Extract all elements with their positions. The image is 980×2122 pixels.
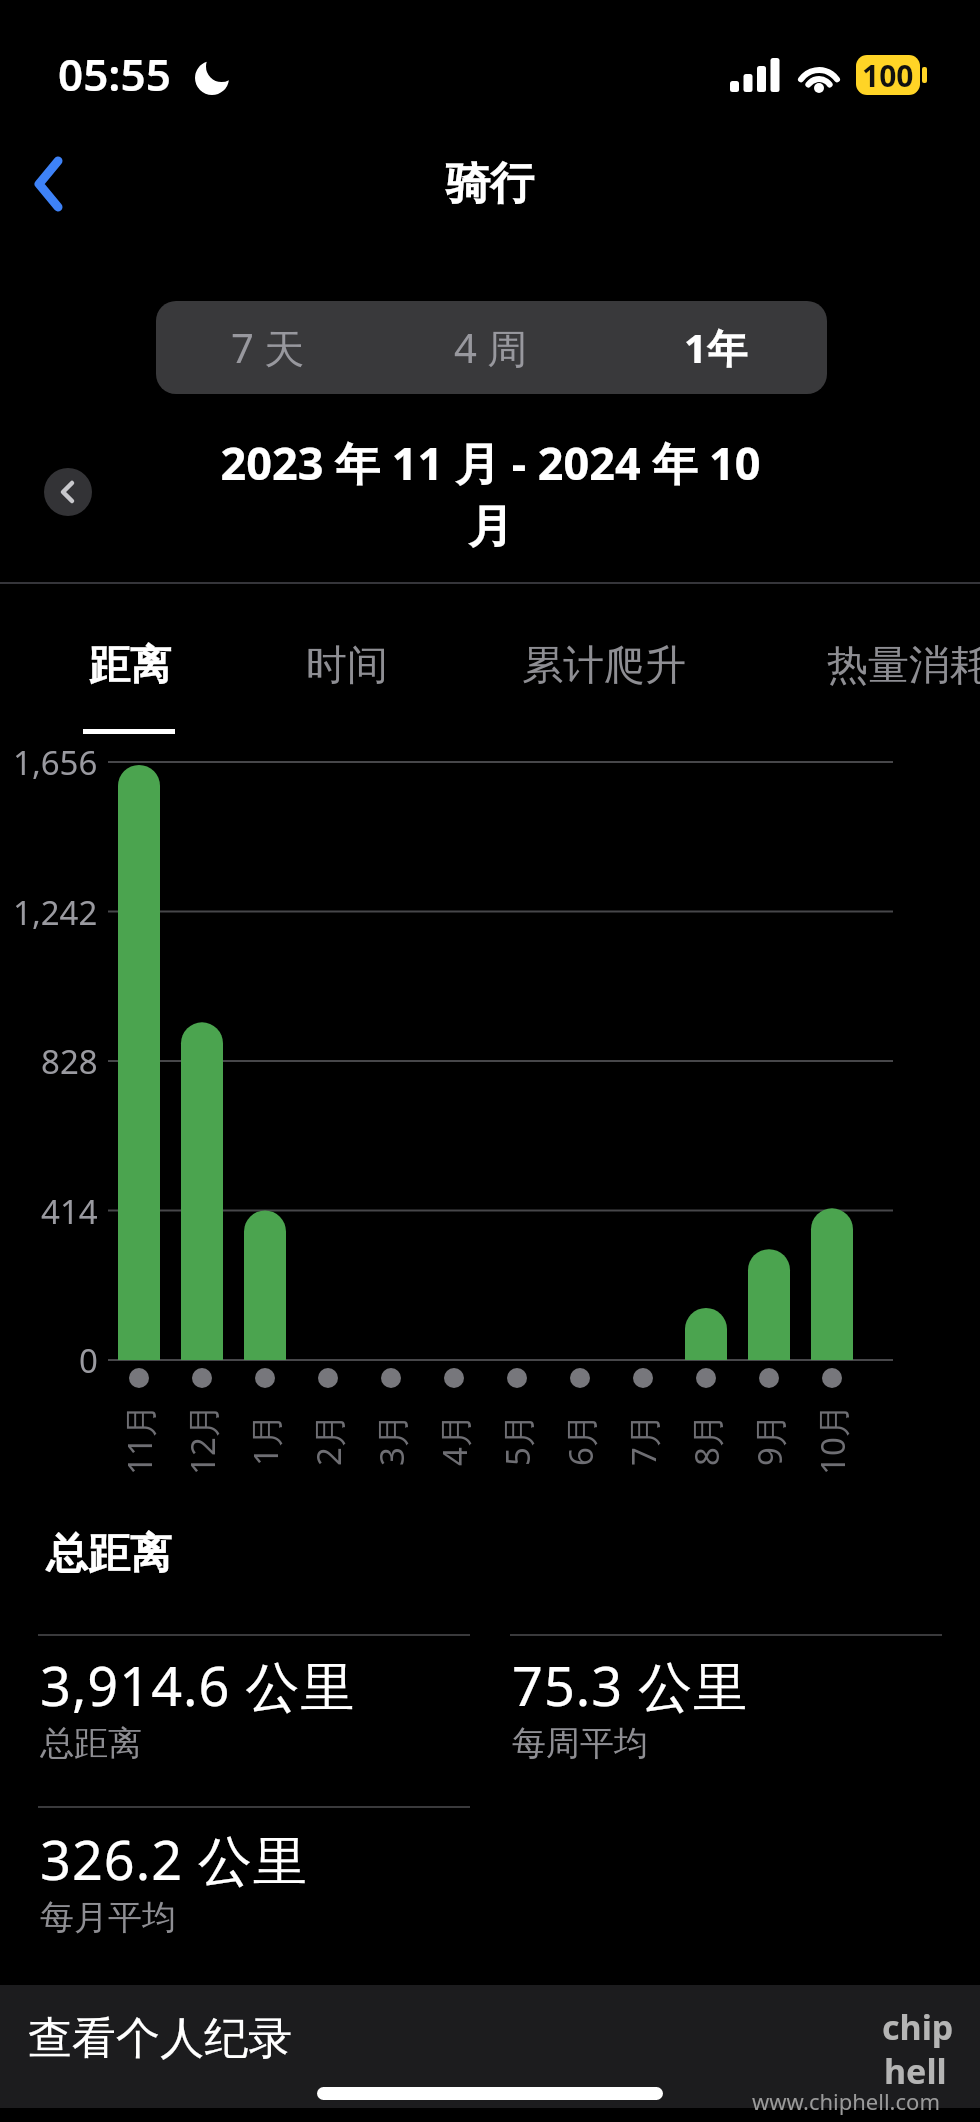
button[interactable]: 时间	[281, 610, 413, 740]
staticText: 12月	[180, 1404, 224, 1475]
staticText: 6月	[558, 1414, 602, 1466]
staticText: 75.3 公里	[512, 1648, 749, 1722]
button[interactable]: 累计爬升	[498, 610, 710, 740]
button[interactable]: 查看个人纪录	[0, 1985, 980, 2108]
staticText: 1,242	[13, 890, 98, 935]
button[interactable]: 4 周	[379, 301, 603, 394]
staticText: 1年	[684, 320, 747, 375]
staticText: 414	[41, 1189, 98, 1234]
staticText: 每周平均	[512, 1722, 648, 1765]
button[interactable]: 1年	[603, 301, 827, 394]
staticText: 11月	[117, 1404, 161, 1475]
staticText: 3月	[369, 1414, 413, 1466]
staticText: 距离	[89, 640, 171, 692]
button[interactable]: 距离	[64, 610, 196, 740]
staticText: 7 天	[231, 320, 305, 375]
staticText: chip	[882, 2004, 954, 2050]
button[interactable]	[44, 468, 92, 516]
staticText: 2月	[306, 1414, 350, 1466]
staticText: 总距离	[40, 1722, 142, 1765]
staticText: www.chiphell.com	[752, 2086, 940, 2116]
staticText: 时间	[306, 640, 388, 692]
staticText: 9月	[747, 1414, 791, 1466]
staticText: hell	[884, 2048, 947, 2094]
staticText: 1,656	[13, 740, 98, 785]
staticText: 7月	[621, 1414, 665, 1466]
staticText: 4月	[432, 1414, 476, 1466]
staticText: 100	[862, 55, 914, 95]
staticText: 查看个人纪录	[28, 2011, 292, 2066]
staticText: 4 周	[454, 320, 528, 375]
staticText: 828	[41, 1039, 98, 1084]
button[interactable]: 热量消耗	[803, 610, 980, 740]
staticText: 总距离	[46, 1528, 172, 1581]
staticText: 2023 年 11 月 - 2024 年 10 月	[220, 432, 761, 556]
staticText: 每月平均	[40, 1896, 176, 1939]
staticText: 05:55	[58, 44, 171, 104]
staticText: 3,914.6 公里	[40, 1648, 356, 1722]
staticText: 热量消耗	[827, 640, 980, 692]
staticText: 8月	[684, 1414, 728, 1466]
button[interactable]	[34, 156, 66, 212]
staticText: 5月	[495, 1414, 539, 1466]
staticText: 累计爬升	[522, 640, 686, 692]
staticText: 骑行	[446, 156, 534, 211]
staticText: 0	[79, 1338, 98, 1383]
staticText: 1月	[243, 1414, 287, 1466]
staticText: 10月	[810, 1404, 854, 1475]
staticText: 326.2 公里	[40, 1822, 309, 1896]
button[interactable]: 7 天	[156, 301, 379, 394]
